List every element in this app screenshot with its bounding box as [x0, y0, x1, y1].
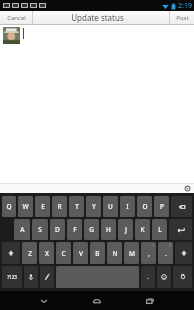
staticText: Q [6, 202, 12, 211]
staticText: O [142, 202, 148, 211]
button[interactable]: K [135, 219, 150, 240]
staticText: C [61, 249, 66, 258]
button[interactable]: Enter [169, 219, 192, 240]
staticText: F [73, 225, 77, 234]
staticText: W [22, 202, 29, 211]
button[interactable]: S [32, 219, 48, 240]
button[interactable]: I [120, 196, 135, 217]
button[interactable]: Recent apps [138, 291, 162, 310]
button[interactable]: . [158, 242, 173, 264]
staticText: A [20, 225, 25, 234]
staticText: V [79, 249, 83, 258]
button[interactable]: ?123 [2, 266, 22, 288]
button[interactable]: O [137, 196, 152, 217]
staticText: S [38, 225, 42, 234]
button[interactable]: Emoji [157, 266, 171, 288]
staticText: E [41, 202, 45, 211]
staticText: G [89, 225, 94, 234]
staticText: . [165, 249, 167, 258]
button[interactable]: M [124, 242, 139, 264]
staticText: U [108, 202, 113, 211]
button[interactable]: N [107, 242, 122, 264]
button[interactable]: Q [2, 196, 16, 217]
button[interactable]: W [18, 196, 33, 217]
staticText: Cancel [7, 14, 26, 22]
staticText: Y [92, 202, 96, 211]
staticText: J [125, 225, 127, 234]
staticText: Post [176, 14, 189, 22]
button[interactable]: Handwriting [40, 266, 54, 288]
staticText: H [106, 225, 111, 234]
button[interactable]: L [152, 219, 167, 240]
button[interactable]: Hide keyboard [32, 291, 56, 310]
staticText: X [45, 249, 49, 258]
staticText: Update status [71, 12, 124, 23]
button[interactable]: Change keyboard [184, 185, 191, 192]
staticText: 2:19 [178, 1, 192, 11]
button[interactable]: Period [141, 266, 155, 288]
button[interactable]: D [50, 219, 65, 240]
staticText: Z [28, 249, 32, 258]
button[interactable]: Backspace [171, 196, 192, 217]
button[interactable]: H [101, 219, 116, 240]
staticText: B [95, 249, 100, 258]
button[interactable]: F [67, 219, 82, 240]
staticText: D [55, 225, 60, 234]
staticText: I [126, 202, 129, 211]
button[interactable]: E [35, 196, 50, 217]
staticText: ?123 [7, 274, 17, 280]
button[interactable]: A [14, 219, 30, 240]
button[interactable]: G [84, 219, 99, 240]
staticText: P [160, 202, 164, 211]
staticText: ? [169, 243, 171, 248]
button[interactable]: Voice input [24, 266, 38, 288]
button[interactable]: U [103, 196, 118, 217]
staticText: M [129, 249, 135, 258]
button[interactable]: R [52, 196, 67, 217]
button[interactable]: Go [173, 266, 192, 288]
button[interactable]: X [39, 242, 54, 264]
button[interactable]: Z [22, 242, 37, 264]
staticText: T [75, 202, 79, 211]
button[interactable]: Post [170, 11, 194, 24]
staticText: ! [153, 243, 154, 248]
staticText: L [158, 225, 162, 234]
button[interactable]: Cancel [0, 11, 32, 24]
button[interactable]: P [154, 196, 169, 217]
button[interactable]: T [69, 196, 84, 217]
staticText: K [140, 225, 145, 234]
button[interactable]: V [73, 242, 88, 264]
button[interactable]: Y [86, 196, 101, 217]
staticText: , [148, 249, 150, 258]
button[interactable]: C [56, 242, 71, 264]
button[interactable]: B [90, 242, 105, 264]
button[interactable]: Shift [175, 242, 192, 264]
button[interactable]: , [141, 242, 156, 264]
staticText: R [57, 202, 62, 211]
button[interactable]: Home [85, 291, 109, 310]
button[interactable]: Shift [2, 242, 20, 264]
button[interactable]: J [118, 219, 133, 240]
staticText: N [112, 249, 118, 258]
